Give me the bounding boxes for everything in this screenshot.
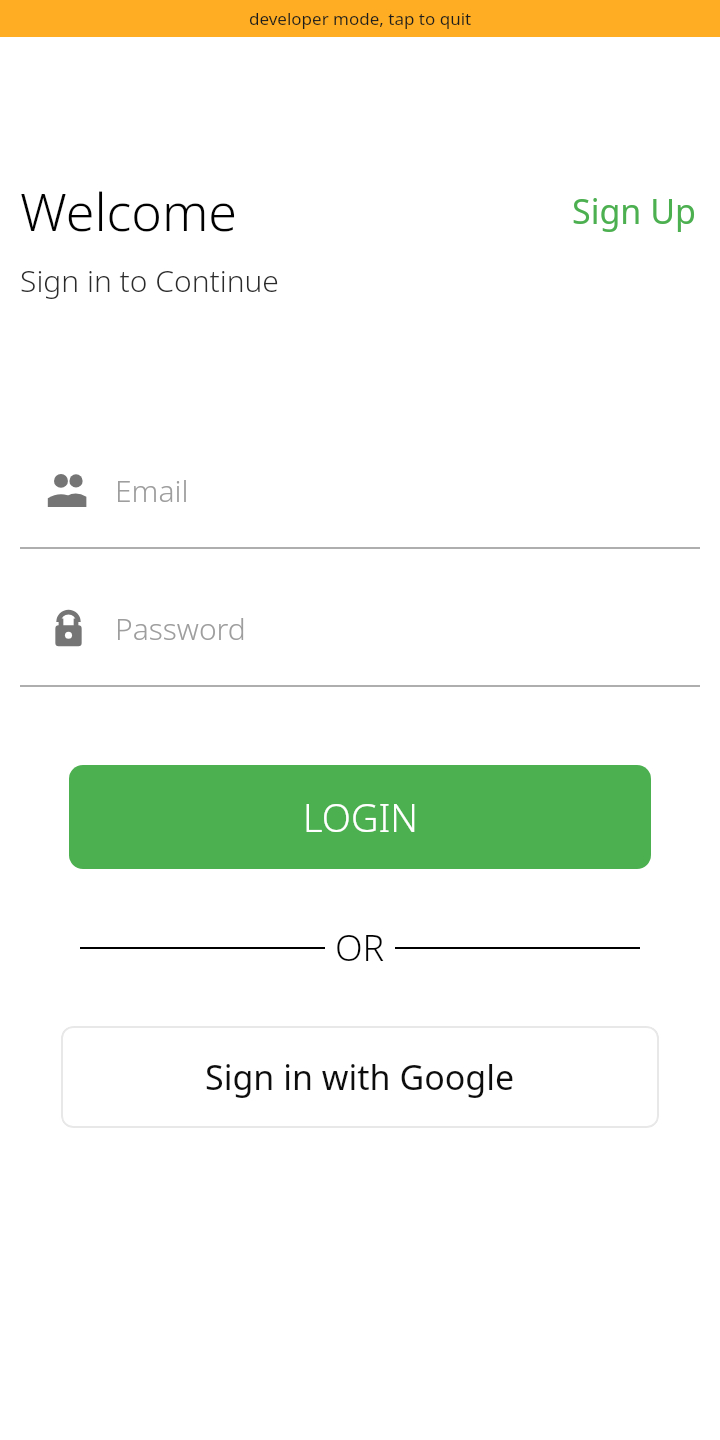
staticText: Email xyxy=(115,470,189,511)
button[interactable]: LOGIN xyxy=(69,765,651,869)
button[interactable]: Password field xyxy=(0,591,720,687)
staticText: Password xyxy=(115,608,246,649)
button[interactable]: Sign in with Google xyxy=(61,1026,659,1128)
staticText: Sign Up xyxy=(572,188,696,234)
button[interactable]: Email field xyxy=(0,453,720,549)
staticText: developer mode, tap to quit xyxy=(249,7,472,30)
staticText: Sign in to Continue xyxy=(20,260,279,301)
staticText: OR xyxy=(335,923,385,972)
staticText: Welcome xyxy=(20,175,238,246)
staticText: Sign in with Google xyxy=(205,1054,515,1100)
staticText: LOGIN xyxy=(303,791,418,843)
button[interactable]: developer mode, tap to quit xyxy=(0,0,720,37)
button[interactable]: Sign Up xyxy=(568,184,700,238)
